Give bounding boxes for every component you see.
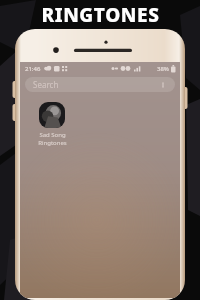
other: More options bbox=[159, 81, 167, 89]
staticText: 38% bbox=[157, 65, 169, 73]
staticText: Sad Song bbox=[39, 131, 66, 139]
staticText: Search bbox=[33, 79, 59, 90]
button[interactable]: Search bbox=[25, 77, 175, 92]
button[interactable]: Sad Song bbox=[30, 102, 74, 147]
staticText: 21:46 bbox=[25, 65, 41, 73]
staticText: Ringtones bbox=[38, 139, 67, 147]
staticText: RINGTONES bbox=[41, 2, 160, 28]
